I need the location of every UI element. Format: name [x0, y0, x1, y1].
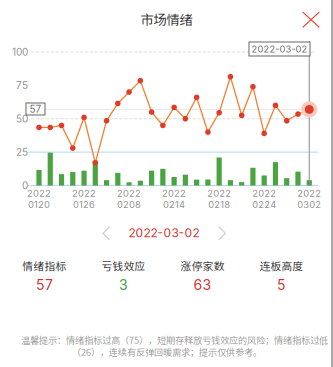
staticText: 2022	[162, 188, 186, 199]
staticText: 2022-03-02	[128, 226, 199, 240]
staticText: 温馨提示：情绪指标过高（75），短期存释放亏钱效应的风险；情绪指标过低	[21, 333, 328, 346]
staticText: 0126	[73, 199, 95, 210]
button[interactable]: 亏钱效应	[84, 254, 163, 297]
staticText: 连板高度	[259, 258, 303, 273]
staticText: 2022	[27, 188, 51, 199]
staticText: 3	[119, 276, 128, 293]
staticText: 2022-03-02	[251, 43, 307, 55]
button[interactable]: Close	[0, 0, 333, 44]
staticText: 0224	[252, 199, 276, 210]
button[interactable]: 情绪指标	[5, 254, 84, 297]
staticText: 2022	[252, 188, 276, 199]
staticText: 0218	[208, 199, 230, 210]
staticText: 2022	[297, 188, 321, 199]
staticText: 63	[193, 276, 211, 293]
staticText: 0	[22, 179, 28, 192]
staticText: （26），连续有反弹回暖需求；提示仅供参考。	[72, 345, 262, 358]
staticText: 57	[29, 103, 41, 115]
staticText: 情绪指标	[22, 258, 66, 273]
staticText: 2022	[207, 188, 231, 199]
staticText: 0214	[163, 199, 185, 210]
staticText: 亏钱效应	[101, 258, 145, 273]
staticText: 100	[12, 46, 28, 58]
button[interactable]: 连板高度	[242, 254, 321, 297]
staticText: 25	[16, 146, 28, 158]
staticText: 市场情绪	[140, 9, 192, 29]
button[interactable]: 涨停家数	[163, 254, 242, 297]
staticText: 0208	[117, 199, 141, 210]
staticText: 5	[277, 276, 286, 293]
staticText: 2022	[117, 188, 141, 199]
staticText: 0302	[297, 199, 321, 210]
staticText: 2022	[72, 188, 96, 199]
staticText: 0120	[28, 199, 50, 210]
staticText: 57	[36, 276, 53, 293]
button[interactable]: Previous day	[0, 0, 333, 367]
button[interactable]: Next day	[0, 0, 333, 367]
staticText: 50	[16, 113, 28, 125]
staticText: 涨停家数	[180, 258, 224, 273]
button[interactable]: 2022-03-02	[114, 222, 214, 244]
staticText: 75	[16, 79, 28, 91]
